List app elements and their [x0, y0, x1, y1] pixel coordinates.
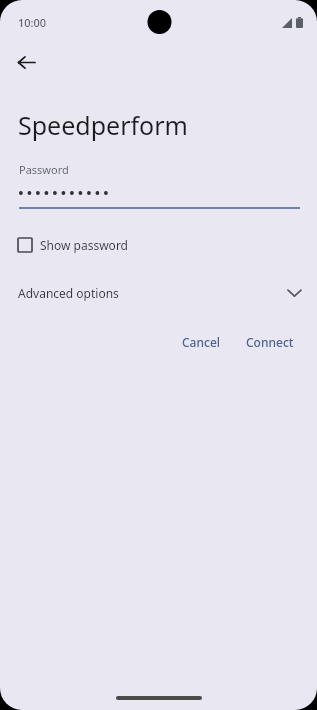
staticText: Show password — [40, 237, 128, 253]
staticText: Speedperform — [18, 108, 188, 142]
staticText: Connect — [246, 334, 294, 350]
staticText: Cancel — [182, 334, 221, 350]
staticText: Password — [19, 162, 69, 177]
staticText: Advanced options — [18, 285, 119, 301]
staticText: 10:00 — [18, 15, 47, 30]
button[interactable]: Back — [6, 42, 46, 82]
button[interactable]: Show password — [18, 234, 138, 256]
button[interactable]: Cancel — [173, 328, 230, 356]
button[interactable]: Advanced options — [0, 280, 317, 306]
button[interactable]: Connect — [237, 328, 303, 356]
